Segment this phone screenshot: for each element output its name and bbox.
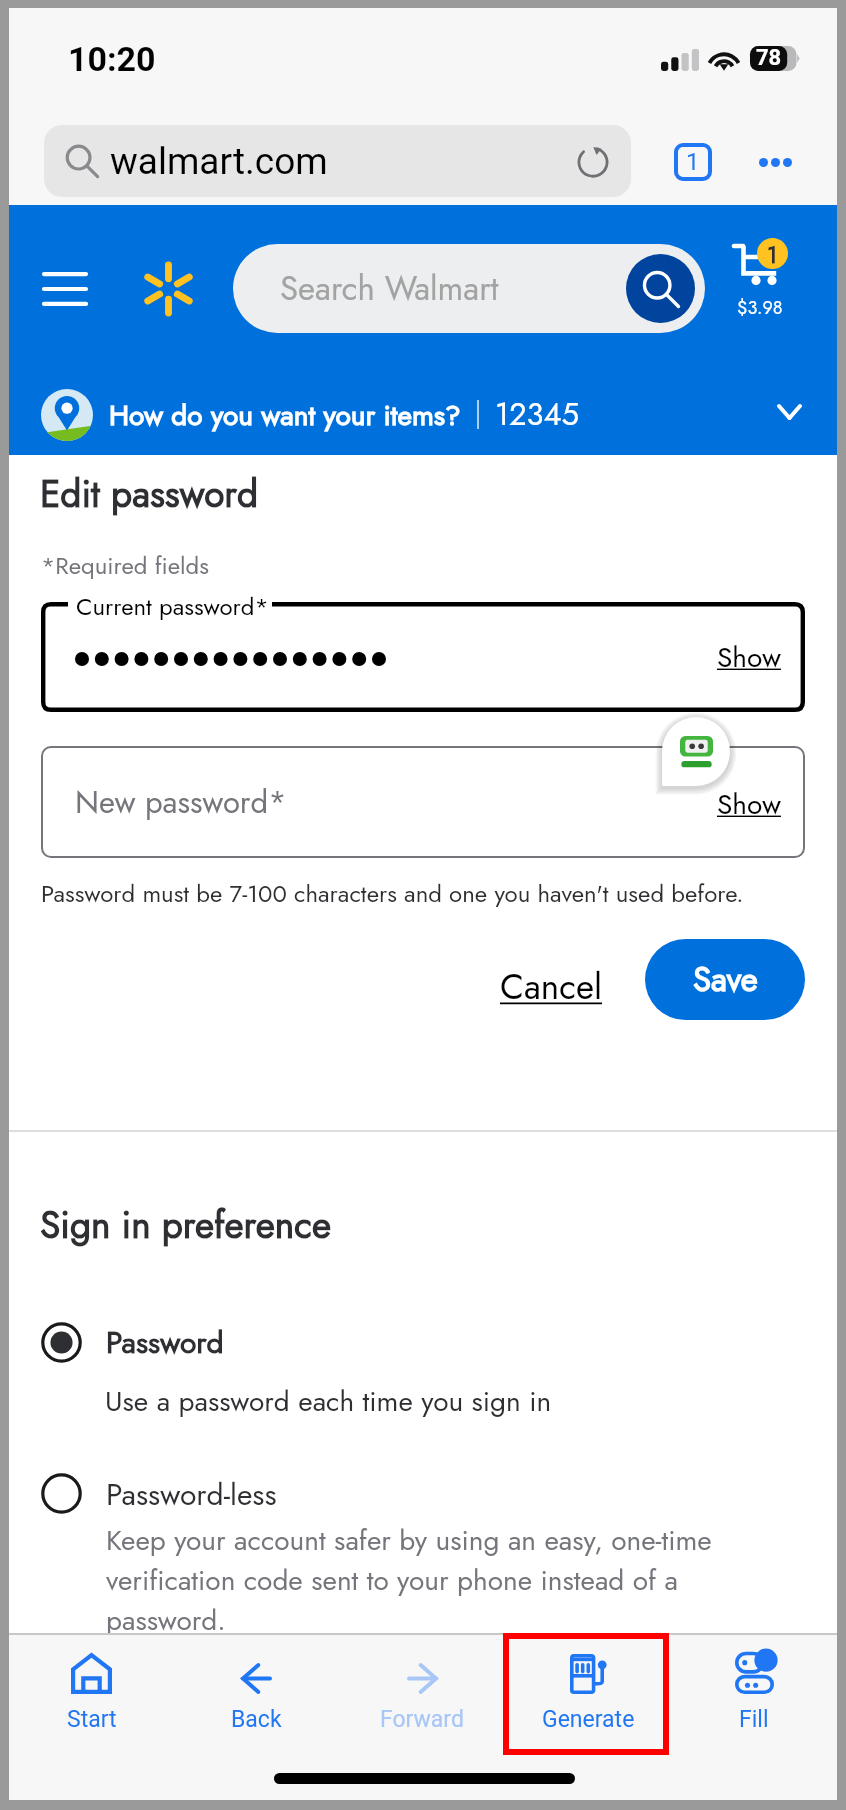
button[interactable]: Cart, $3.98 xyxy=(721,243,799,321)
staticText: Search Walmart xyxy=(280,265,499,313)
staticText: 1 xyxy=(767,238,778,269)
staticText: Edit password xyxy=(40,467,259,520)
staticText: Password must be 7-100 characters and on… xyxy=(41,876,744,911)
staticText: Forward xyxy=(380,1706,464,1733)
button[interactable]: Tabs xyxy=(669,138,717,186)
staticText: walmart.com xyxy=(110,140,328,183)
button[interactable]: Save xyxy=(645,939,805,1020)
staticText: Use a password each time you sign in xyxy=(105,1381,552,1421)
staticText: Keep your account safer by using an easy… xyxy=(106,1520,736,1640)
button[interactable]: How do you want your items? xyxy=(9,373,837,455)
staticText: Start xyxy=(67,1706,117,1733)
staticText: Sign in preference xyxy=(40,1198,331,1251)
button[interactable]: More options xyxy=(747,134,803,190)
staticText: How do you want your items? xyxy=(109,395,461,435)
staticText: Password xyxy=(106,1321,224,1364)
button[interactable]: Password xyxy=(9,1317,837,1368)
staticText: Password-less xyxy=(106,1473,277,1516)
button[interactable]: walmart.com xyxy=(44,125,631,197)
staticText: New password* xyxy=(75,780,287,825)
button[interactable]: Generate xyxy=(505,1633,671,1733)
button[interactable]: Forward xyxy=(339,1633,505,1733)
staticText: 10:20 xyxy=(68,39,156,79)
staticText: 12345 xyxy=(495,392,580,437)
staticText: $3.98 xyxy=(737,295,783,321)
button[interactable]: Cancel xyxy=(500,962,602,1013)
staticText: 78 xyxy=(756,45,782,71)
staticText: Current password* xyxy=(76,589,269,624)
staticText: *Required fields xyxy=(41,548,209,583)
staticText: Save xyxy=(693,956,758,1004)
button[interactable]: Show xyxy=(717,637,781,677)
staticText: 1 xyxy=(686,148,700,176)
button[interactable]: Password-less xyxy=(9,1469,837,1640)
button[interactable]: Show xyxy=(717,784,781,824)
button[interactable]: Search Walmart xyxy=(233,244,705,333)
button[interactable]: Search xyxy=(626,254,695,323)
button[interactable]: Back xyxy=(174,1633,339,1733)
button[interactable]: Start xyxy=(9,1633,174,1733)
button[interactable]: Fill xyxy=(671,1633,837,1733)
button[interactable]: Menu xyxy=(29,253,101,325)
other: Expand location options xyxy=(769,392,809,432)
staticText: Back xyxy=(231,1706,282,1733)
staticText: Fill xyxy=(739,1706,769,1733)
staticText: Generate xyxy=(542,1706,635,1733)
